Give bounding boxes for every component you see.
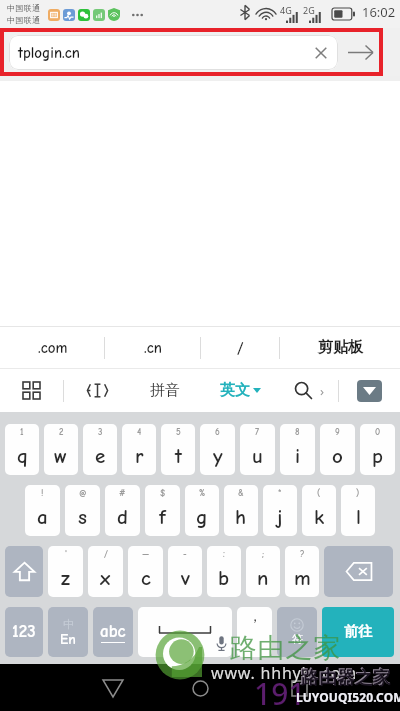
button[interactable]: *	[263, 485, 297, 536]
button[interactable]: 5	[161, 424, 195, 475]
button[interactable]: tplogin.cn	[9, 35, 338, 70]
button[interactable]: 4	[122, 424, 156, 475]
staticText: p	[372, 444, 383, 468]
button[interactable]: !	[25, 485, 60, 536]
staticText: -	[183, 549, 187, 559]
button[interactable]: 拼音	[130, 369, 200, 412]
button[interactable]: 2	[44, 424, 78, 475]
staticText: z	[61, 566, 71, 590]
button[interactable]: )	[341, 485, 375, 536]
staticText: 符	[292, 632, 303, 646]
staticText: 中国联通	[7, 15, 41, 25]
button[interactable]: ?	[285, 546, 319, 597]
button[interactable]: Go	[338, 28, 383, 76]
staticText: h	[235, 505, 247, 529]
staticText: n	[257, 566, 269, 590]
staticText: o	[332, 444, 343, 468]
staticText: r	[135, 444, 144, 468]
button[interactable]: 6	[200, 424, 235, 475]
button[interactable]: Keyboard layout	[0, 369, 63, 412]
staticText: g	[196, 505, 208, 529]
staticText: (	[317, 488, 321, 498]
staticText: LUYOUQI520.COM	[296, 689, 400, 705]
staticText: tplogin.cn	[18, 44, 80, 61]
staticText: 1	[20, 427, 24, 437]
staticText: :	[223, 549, 225, 559]
button[interactable]: Recent apps	[282, 671, 316, 705]
button[interactable]: Symbols	[277, 607, 317, 657]
button[interactable]: Hide keyboard	[339, 369, 400, 412]
staticText: 6	[215, 427, 220, 437]
button[interactable]: 7	[240, 424, 275, 475]
button[interactable]: /	[88, 546, 123, 597]
button[interactable]: 英文	[200, 369, 280, 412]
button[interactable]: Clear text	[310, 42, 332, 64]
staticText: 16:02	[362, 3, 396, 21]
staticText: m	[294, 566, 311, 590]
button[interactable]: &	[224, 485, 258, 536]
staticText: 4G	[280, 4, 292, 16]
staticText: v	[181, 566, 190, 590]
button[interactable]: (	[302, 485, 336, 536]
button[interactable]: —	[128, 546, 163, 597]
staticText: @	[79, 488, 87, 498]
button[interactable]: 剪贴板	[280, 327, 400, 368]
button[interactable]: 3	[83, 424, 117, 475]
button[interactable]: Search	[280, 369, 338, 412]
button[interactable]: Numbers	[5, 607, 43, 657]
staticText: t	[175, 444, 182, 468]
staticText: 0	[375, 427, 381, 437]
button[interactable]: ;	[246, 546, 280, 597]
staticText: f	[159, 505, 166, 529]
staticText: ，	[248, 608, 262, 626]
button[interactable]: 8	[280, 424, 315, 475]
staticText: 2G	[303, 4, 315, 16]
button[interactable]: Move cursor	[64, 369, 130, 412]
button[interactable]: .cn	[105, 327, 201, 368]
staticText: 路由之家	[229, 631, 341, 665]
staticText: q	[17, 444, 28, 468]
staticText: $	[160, 488, 166, 498]
staticText: &	[238, 488, 244, 498]
button[interactable]: @	[65, 485, 100, 536]
staticText: 8	[295, 427, 300, 437]
button[interactable]: 前往	[322, 607, 394, 657]
button[interactable]: :	[207, 546, 241, 597]
button[interactable]: 9	[320, 424, 355, 475]
staticText: www. hhhyb. com	[211, 662, 357, 684]
staticText: w	[54, 444, 68, 468]
button[interactable]: Language	[48, 607, 88, 657]
staticText: 3	[98, 427, 103, 437]
button[interactable]: %	[185, 485, 219, 536]
staticText: 中国联通	[7, 3, 41, 13]
staticText: 191	[254, 673, 306, 711]
staticText: /	[237, 339, 244, 356]
button[interactable]: -	[168, 546, 202, 597]
button[interactable]: Backspace	[324, 546, 393, 597]
button[interactable]: Back	[96, 671, 130, 705]
button[interactable]: .com	[0, 327, 105, 368]
button[interactable]: Shift	[5, 546, 43, 597]
staticText: y	[213, 444, 223, 468]
button[interactable]: Space	[138, 607, 232, 657]
button[interactable]: ，	[237, 607, 272, 657]
staticText: 9	[335, 427, 340, 437]
staticText: s	[78, 505, 87, 529]
button[interactable]: #	[105, 485, 140, 536]
staticText: 路由器之家	[301, 667, 391, 690]
staticText: x	[100, 566, 111, 590]
button[interactable]: /	[201, 327, 280, 368]
staticText: u	[252, 444, 263, 468]
button[interactable]: '	[48, 546, 83, 597]
button[interactable]: Home	[183, 671, 217, 705]
button[interactable]: $	[145, 485, 180, 536]
button[interactable]: abc	[93, 607, 133, 657]
button[interactable]: 1	[5, 424, 39, 475]
staticText: —	[142, 549, 150, 559]
button[interactable]: 0	[360, 424, 395, 475]
staticText: k	[314, 505, 325, 529]
staticText: /	[104, 549, 108, 559]
staticText: c	[141, 566, 151, 590]
staticText: 5	[176, 427, 181, 437]
staticText: .com	[38, 339, 68, 356]
